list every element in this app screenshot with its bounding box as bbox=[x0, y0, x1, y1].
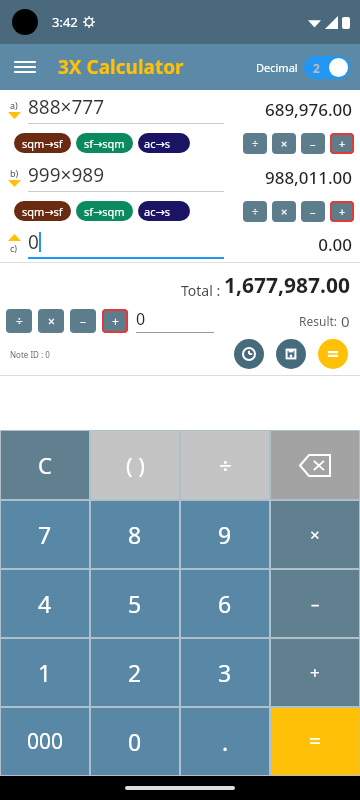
staticText: ÷ bbox=[252, 204, 259, 219]
staticText: Result: bbox=[299, 313, 341, 329]
staticText: b) bbox=[10, 167, 19, 179]
staticText: ( ) bbox=[126, 450, 145, 480]
staticText: 888×777 bbox=[28, 94, 105, 120]
staticText: 3 bbox=[218, 657, 232, 688]
button[interactable]: 2 bbox=[91, 639, 179, 706]
staticText: × bbox=[281, 136, 288, 151]
button[interactable]: 3 bbox=[181, 639, 269, 706]
staticText: 999×989 bbox=[28, 162, 105, 188]
staticText: 2 bbox=[313, 60, 320, 76]
staticText: × bbox=[281, 204, 288, 219]
button[interactable]: – bbox=[301, 133, 325, 154]
button[interactable]: ac→s bbox=[138, 133, 190, 153]
staticText: + bbox=[310, 661, 320, 684]
button[interactable]: sf→sqm bbox=[76, 201, 133, 221]
staticText: – bbox=[80, 313, 87, 329]
staticText: ÷ bbox=[252, 136, 259, 151]
staticText: ac→s bbox=[144, 204, 170, 219]
button[interactable]: 8 bbox=[91, 501, 179, 568]
staticText: – bbox=[310, 204, 316, 219]
button[interactable]: × bbox=[272, 133, 296, 154]
button[interactable]: × bbox=[271, 501, 359, 568]
button[interactable]: 6 bbox=[181, 570, 269, 637]
staticText: × bbox=[310, 523, 320, 546]
staticText: 0 bbox=[136, 308, 146, 330]
staticText: Note ID : 0 bbox=[10, 349, 50, 360]
staticText: 5 bbox=[128, 588, 142, 619]
staticText: 0 bbox=[341, 311, 350, 331]
staticText: × bbox=[48, 313, 55, 329]
button[interactable]: Menu bbox=[8, 50, 42, 84]
staticText: 8 bbox=[128, 519, 142, 550]
staticText: ÷ bbox=[16, 313, 23, 329]
button[interactable]: sf→sqm bbox=[76, 133, 133, 153]
staticText: 1,677,987.00 bbox=[224, 271, 350, 300]
button[interactable]: + bbox=[330, 133, 354, 154]
staticText: + bbox=[339, 136, 346, 151]
staticText: Decimal bbox=[256, 60, 298, 75]
button[interactable]: . bbox=[181, 708, 269, 775]
button[interactable]: Backspace bbox=[271, 431, 359, 499]
staticText: – bbox=[310, 136, 316, 151]
staticText: a) bbox=[10, 99, 18, 111]
button[interactable]: 000 bbox=[1, 708, 89, 775]
staticText: c) bbox=[10, 242, 18, 254]
button[interactable]: + bbox=[330, 201, 354, 222]
staticText: + bbox=[339, 204, 346, 219]
staticText: 6 bbox=[218, 588, 232, 619]
staticText: sf→sqm bbox=[84, 204, 125, 219]
button[interactable]: Decimal bbox=[256, 56, 350, 79]
button[interactable]: C bbox=[1, 431, 89, 499]
other: Backspace bbox=[300, 455, 330, 476]
staticText: 3:42 bbox=[52, 13, 78, 31]
button[interactable]: – bbox=[70, 309, 96, 333]
button[interactable]: ( ) bbox=[91, 431, 179, 499]
button[interactable]: × bbox=[272, 201, 296, 222]
button[interactable]: × bbox=[38, 309, 64, 333]
button[interactable]: + bbox=[271, 639, 359, 706]
staticText: sqm→sf bbox=[22, 204, 63, 219]
button[interactable]: Save bbox=[276, 339, 306, 369]
staticText: ÷ bbox=[219, 450, 232, 480]
button[interactable]: 9 bbox=[181, 501, 269, 568]
staticText: 000 bbox=[27, 727, 64, 756]
button[interactable]: 1 bbox=[1, 639, 89, 706]
staticText: 2 bbox=[128, 657, 142, 688]
button[interactable]: History bbox=[234, 339, 264, 369]
staticText: 689,976.00 bbox=[230, 98, 352, 121]
staticText: . bbox=[222, 726, 229, 757]
staticText: 988,011.00 bbox=[230, 166, 352, 189]
button[interactable]: = bbox=[271, 708, 359, 775]
staticText: sf→sqm bbox=[84, 136, 125, 151]
staticText: 1 bbox=[38, 657, 52, 688]
button[interactable]: ac→s bbox=[138, 201, 190, 221]
button[interactable]: – bbox=[301, 201, 325, 222]
staticText: Total : bbox=[181, 281, 224, 300]
button[interactable]: ÷ bbox=[6, 309, 32, 333]
button[interactable]: 7 bbox=[1, 501, 89, 568]
staticText: ac→s bbox=[144, 136, 170, 151]
staticText: sqm→sf bbox=[22, 136, 63, 151]
button[interactable]: ÷ bbox=[243, 201, 267, 222]
staticText: 7 bbox=[38, 519, 52, 550]
staticText: 4 bbox=[38, 588, 52, 619]
button[interactable]: Equals bbox=[318, 339, 348, 369]
staticText: + bbox=[112, 313, 119, 329]
staticText: 0 bbox=[28, 229, 39, 255]
button[interactable]: + bbox=[102, 309, 128, 333]
button[interactable]: 0 bbox=[91, 708, 179, 775]
staticText: 0 bbox=[128, 726, 142, 757]
staticText: 3X Calculator bbox=[58, 54, 184, 80]
staticText: 9 bbox=[218, 519, 232, 550]
button[interactable]: – bbox=[271, 570, 359, 637]
button[interactable]: sqm→sf bbox=[14, 201, 71, 221]
button[interactable]: ÷ bbox=[181, 431, 269, 499]
staticText: C bbox=[38, 450, 52, 480]
button[interactable]: 5 bbox=[91, 570, 179, 637]
button[interactable]: sqm→sf bbox=[14, 133, 71, 153]
staticText: – bbox=[311, 592, 320, 615]
staticText: = bbox=[309, 727, 322, 756]
button[interactable]: ÷ bbox=[243, 133, 267, 154]
staticText: 0.00 bbox=[230, 233, 352, 256]
button[interactable]: 4 bbox=[1, 570, 89, 637]
